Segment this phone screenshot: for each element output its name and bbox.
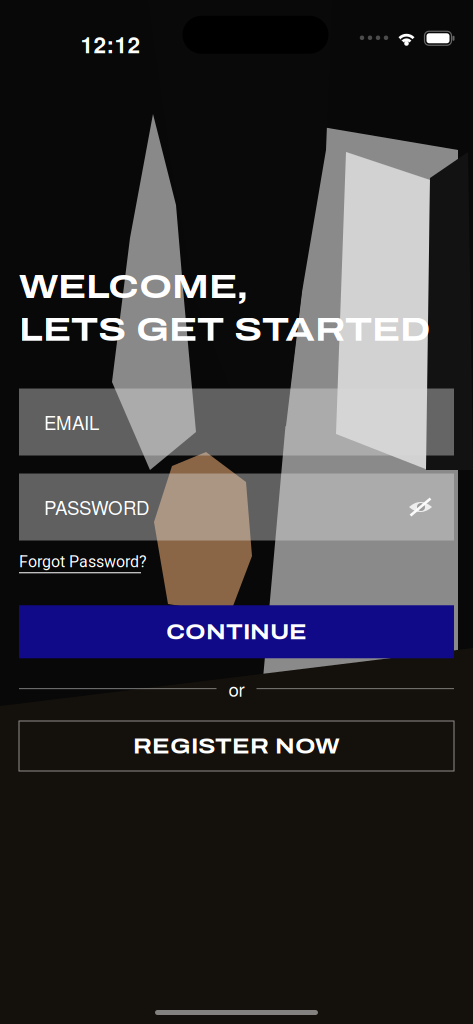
staticText: PASSWORD — [44, 494, 149, 520]
button[interactable]: CONTINUE — [19, 605, 454, 658]
staticText: WELCOME, — [19, 269, 248, 305]
button[interactable]: REGISTER NOW — [19, 721, 454, 771]
staticText: CONTINUE — [166, 619, 307, 644]
button[interactable]: PASSWORD — [19, 473, 454, 540]
staticText: EMAIL — [44, 409, 99, 435]
staticText: LETS GET STARTED — [19, 312, 431, 347]
staticText: REGISTER NOW — [133, 734, 340, 758]
staticText: or — [228, 675, 244, 702]
button[interactable]: EMAIL — [19, 388, 454, 455]
staticText: 12:12 — [80, 28, 140, 60]
button[interactable]: Forgot Password? — [19, 552, 147, 573]
staticText: Forgot Password? — [19, 552, 147, 571]
